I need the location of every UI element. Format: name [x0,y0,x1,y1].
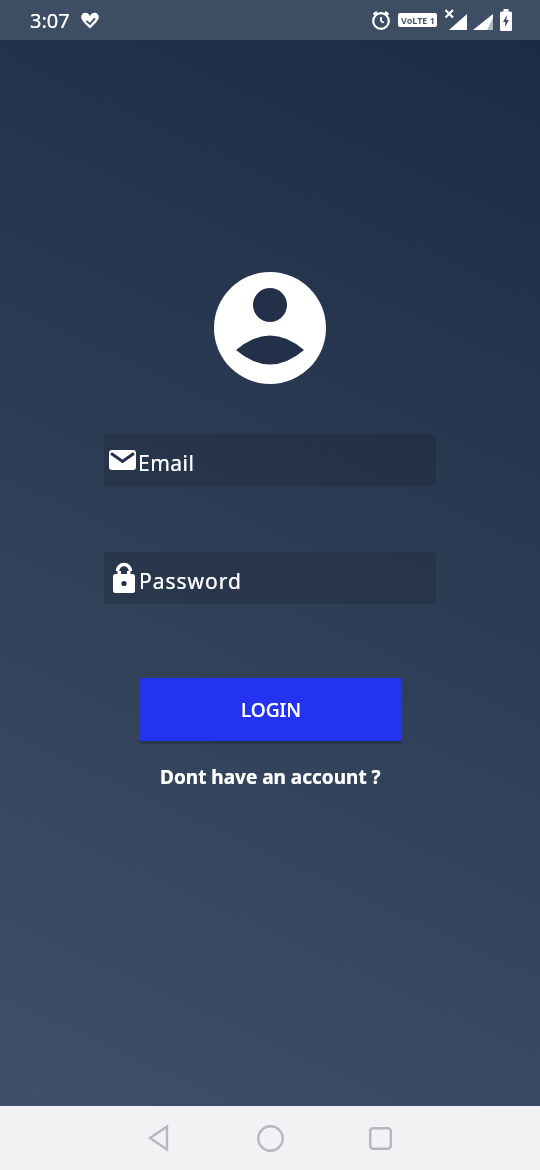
button[interactable]: Email [104,434,436,486]
staticText: Password [139,567,242,596]
button[interactable] [246,1114,294,1162]
button[interactable] [135,1114,183,1162]
button[interactable]: LOGIN [139,678,402,741]
staticText: Email [138,449,195,478]
staticText: VoLTE 1 [401,14,435,26]
button[interactable] [356,1114,404,1162]
staticText: LOGIN [241,697,301,723]
button[interactable]: Dont have an account ? [160,764,381,790]
staticText: Dont have an account ? [160,764,381,790]
staticText: 3:07 [30,7,70,34]
button[interactable]: Password [104,552,436,604]
